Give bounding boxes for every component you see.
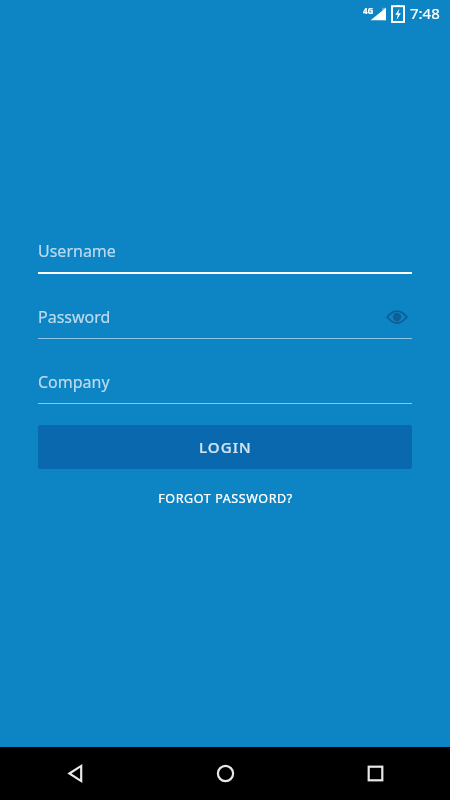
button[interactable]: Username	[38, 236, 412, 274]
button[interactable]: Home	[150, 747, 300, 800]
button[interactable]: Show password	[382, 302, 412, 332]
button[interactable]: FORGOT PASSWORD?	[38, 485, 412, 511]
button[interactable]: Company	[38, 367, 412, 404]
staticText: FORGOT PASSWORD?	[158, 490, 293, 507]
staticText: 4G	[363, 5, 374, 16]
button[interactable]: LOGIN	[38, 425, 412, 469]
button[interactable]: Password	[38, 302, 412, 339]
button[interactable]: Recent apps	[300, 747, 450, 800]
staticText: LOGIN	[199, 437, 252, 457]
staticText: Company	[38, 371, 110, 393]
staticText: Password	[38, 306, 111, 328]
staticText: 7:48	[410, 3, 440, 23]
button[interactable]: Back	[0, 747, 150, 800]
staticText: Username	[38, 240, 116, 262]
